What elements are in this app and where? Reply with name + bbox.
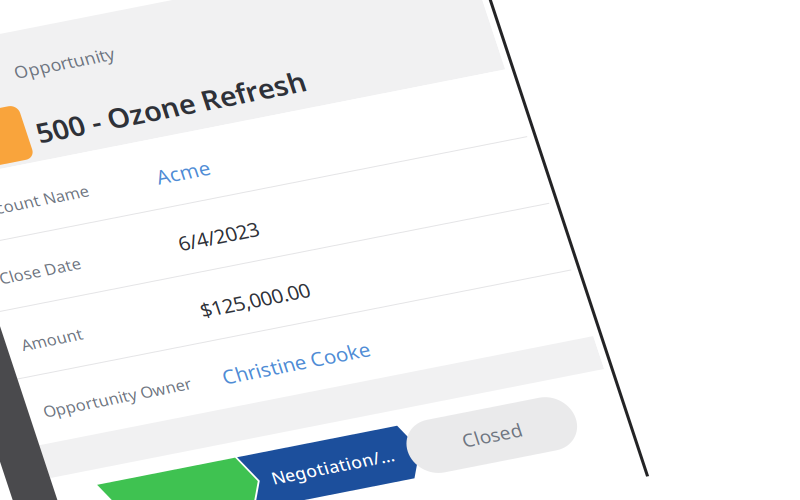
button[interactable] (0, 327, 556, 398)
staticText: Opportunity (94, 80, 194, 103)
button[interactable] (0, 398, 556, 469)
staticText: 500 - Ozone Refresh (96, 138, 365, 175)
staticText: Opportunity Owner (16, 426, 164, 447)
staticText: $125,000.00 (195, 353, 304, 380)
button[interactable] (0, 185, 556, 256)
button[interactable] (0, 256, 556, 327)
staticText: Christine Cooke (195, 424, 342, 451)
staticText: Account Name (16, 213, 127, 234)
staticText: Acme (195, 211, 248, 238)
staticText: 6/4/2023 (195, 282, 275, 309)
staticText: Amount (16, 355, 77, 376)
staticText: Close Date (16, 284, 97, 305)
